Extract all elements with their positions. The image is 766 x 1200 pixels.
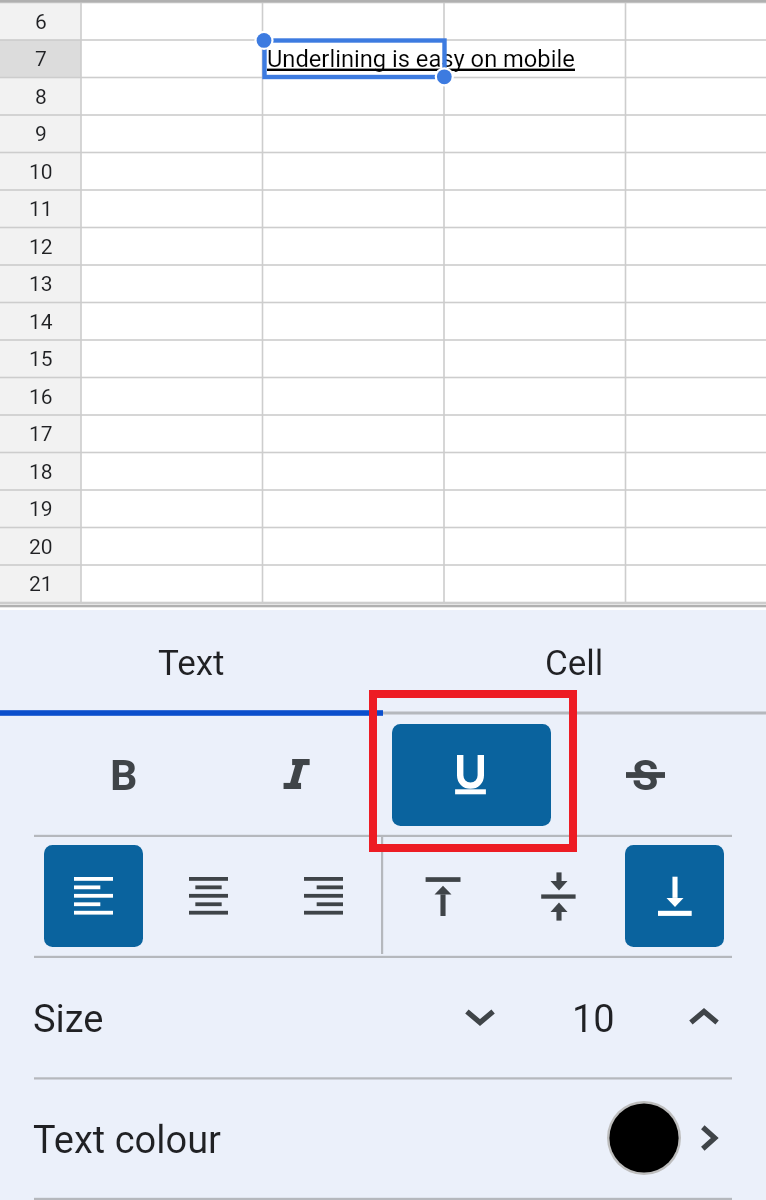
staticText: 11	[29, 197, 53, 222]
button[interactable]: Underline	[392, 724, 551, 826]
staticText: 17	[29, 422, 53, 447]
button[interactable]: Align center	[159, 845, 258, 947]
button[interactable]: Increase font size	[661, 957, 747, 1077]
staticText: 9	[35, 122, 47, 147]
button[interactable]: Size	[0, 957, 766, 1077]
staticText: B	[110, 750, 138, 800]
staticText: 19	[29, 497, 53, 522]
staticText: 20	[29, 535, 53, 560]
staticText: 18	[29, 460, 53, 485]
button[interactable]: Align left	[44, 845, 143, 947]
staticText: 10	[29, 160, 53, 185]
button[interactable]: Bold	[44, 724, 203, 826]
button[interactable]: Text colour	[0, 1078, 766, 1198]
button[interactable]: Align bottom	[625, 845, 724, 947]
staticText: 10	[572, 997, 615, 1042]
button[interactable]: Decrease font size	[437, 957, 523, 1077]
button[interactable]: Text	[0, 611, 383, 716]
staticText: 6	[35, 10, 47, 35]
staticText: 14	[29, 310, 53, 335]
staticText: 15	[29, 347, 53, 372]
staticText: 8	[35, 85, 47, 110]
staticText: Cell	[545, 643, 604, 684]
staticText: Text	[158, 643, 225, 684]
staticText: 16	[29, 385, 53, 410]
button[interactable]: Strikethrough	[566, 724, 725, 826]
button[interactable]: Italic	[218, 724, 377, 826]
staticText: Size	[33, 997, 104, 1042]
button[interactable]: Align top	[393, 845, 492, 947]
staticText: 13	[29, 272, 53, 297]
button[interactable]: Cell	[383, 611, 766, 716]
staticText: 7	[35, 47, 47, 72]
staticText: Underlining is easy on mobile	[267, 45, 575, 73]
staticText: 12	[29, 235, 53, 260]
staticText: Text colour	[33, 1118, 221, 1163]
staticText: S	[632, 750, 659, 800]
button[interactable]: Align right	[274, 845, 373, 947]
staticText: 21	[29, 572, 53, 597]
button[interactable]: Align middle	[509, 845, 608, 947]
